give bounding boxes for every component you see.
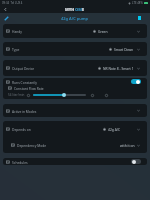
staticText: Runs Constantly: [12, 80, 38, 84]
staticText: Smart Down: [114, 47, 134, 51]
button[interactable]: Edit: [2, 14, 10, 22]
staticText: 54 liter/min: [8, 93, 25, 97]
button[interactable]: Output Device: [3, 60, 147, 76]
staticText: OM: [75, 7, 82, 12]
button[interactable]: Handy: [3, 24, 147, 38]
button[interactable]: Runs Constantly: [3, 78, 147, 85]
button[interactable]: Depends on: [3, 121, 147, 137]
staticText: Handy: [12, 29, 23, 33]
staticText: Schedules: [12, 160, 28, 164]
button[interactable]: Schedules: [3, 158, 147, 165]
staticText: LTE 48%: [132, 1, 143, 5]
staticText: Green: [98, 29, 108, 33]
button[interactable]: Runs Constantly toggle: [131, 79, 141, 84]
button[interactable]: Schedules toggle: [131, 159, 141, 164]
staticText: 42g A/C: [108, 127, 121, 131]
staticText: Dependency Mode: [17, 143, 47, 147]
staticText: 42g A/C pump: [61, 16, 89, 21]
button[interactable]: Dependency Mode: [3, 137, 147, 153]
button[interactable]: Type: [3, 42, 147, 56]
button[interactable]: Back: [1, 5, 10, 13]
staticText: MYH: [65, 7, 75, 12]
button[interactable]: Active in Modes: [3, 104, 147, 117]
staticText: NR Note 8 - Smart 1: [103, 66, 134, 70]
staticText: E: [82, 7, 85, 12]
staticText: Depends on: [12, 127, 31, 131]
staticText: Constant Flow Rate: [14, 86, 44, 90]
staticText: Output Device: [12, 66, 35, 70]
staticText: Active in Modes: [12, 109, 37, 113]
staticText: with it on: [120, 143, 135, 147]
staticText: Type: [12, 47, 20, 51]
staticText: 09:34 Tel LUX 4: [2, 1, 23, 5]
